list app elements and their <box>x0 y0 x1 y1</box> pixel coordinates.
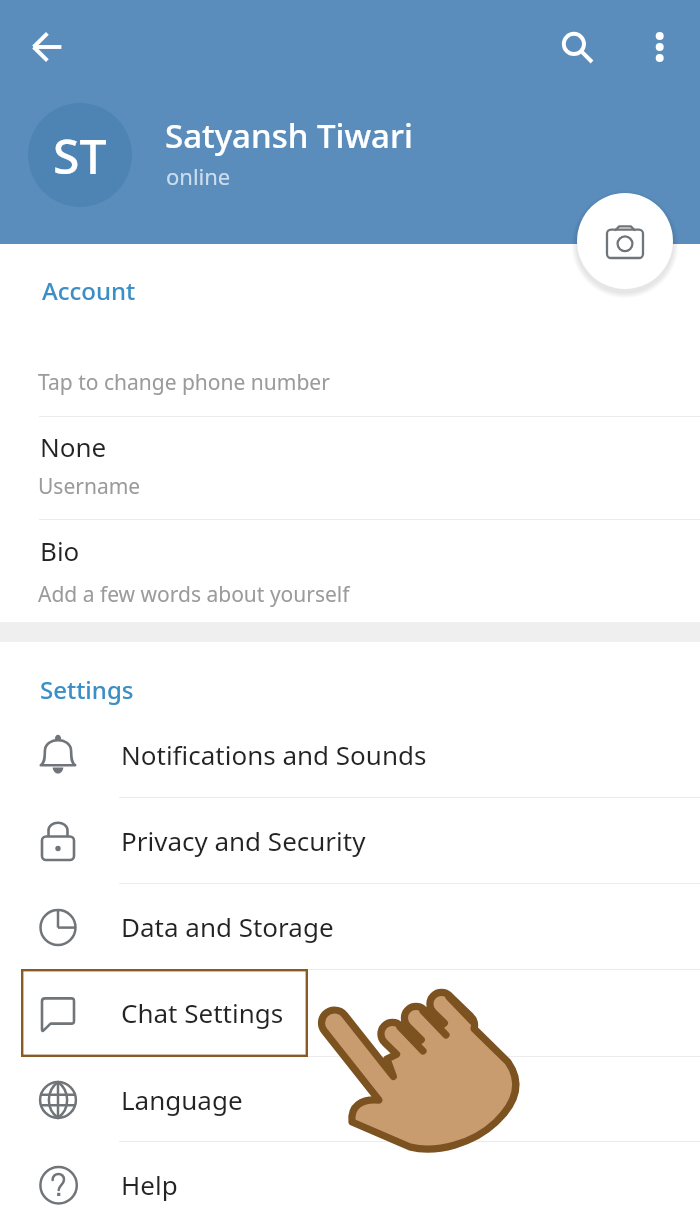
button[interactable]: Back <box>17 17 77 77</box>
button[interactable]: None <box>0 410 700 516</box>
button[interactable]: More options <box>630 17 690 77</box>
staticText: Notifications and Sounds <box>121 737 427 772</box>
button[interactable]: Change profile photo <box>577 193 673 289</box>
staticText: None <box>40 429 107 464</box>
staticText: ST <box>53 123 107 188</box>
other: Tap here <box>0 0 700 1228</box>
button[interactable]: Tap to change phone number <box>0 335 700 409</box>
button[interactable]: Privacy and Security <box>0 797 700 883</box>
button[interactable]: Account <box>42 274 136 307</box>
staticText: Tap to change phone number <box>38 368 330 397</box>
button[interactable]: Bio <box>0 517 700 622</box>
staticText: Username <box>38 472 141 501</box>
staticText: Data and Storage <box>121 909 334 944</box>
button[interactable]: Profile photo <box>28 103 132 207</box>
staticText: Satyansh Tiwari <box>165 113 413 158</box>
staticText: online <box>166 161 231 191</box>
button[interactable]: Chat Settings <box>0 969 700 1055</box>
staticText: Language <box>121 1082 243 1117</box>
staticText: Chat Settings <box>121 995 284 1030</box>
staticText: Help <box>121 1167 178 1202</box>
staticText: Add a few words about yourself <box>38 580 350 609</box>
button[interactable]: Search <box>548 17 608 77</box>
staticText: Privacy and Security <box>121 823 366 858</box>
button[interactable]: Settings <box>40 673 134 706</box>
button[interactable]: Language <box>0 1056 700 1142</box>
button[interactable]: Data and Storage <box>0 883 700 969</box>
button[interactable]: Notifications and Sounds <box>0 711 700 797</box>
button[interactable]: Help <box>0 1141 700 1227</box>
staticText: Bio <box>40 533 80 568</box>
